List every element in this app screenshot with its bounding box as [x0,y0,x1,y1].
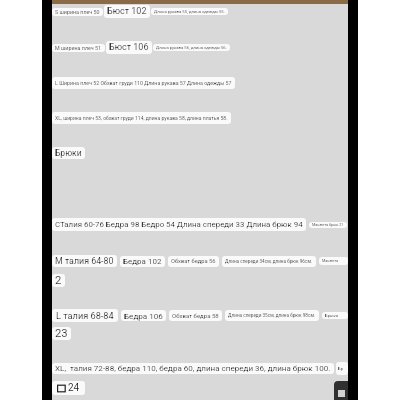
staticText: Длина рукава 56, длина одежды 56. [156,45,227,50]
staticText: 24 [68,382,80,394]
button[interactable]: Брюки [336,362,348,375]
staticText: Брюки [338,366,346,371]
button[interactable]: СТалия 60-76 Бедра 98 Бедро 54 Длина спе… [52,218,306,231]
button[interactable]: Длина спереди 35см, длина брюк 98см. [225,310,319,321]
staticText: Бедра 102 [123,257,162,266]
staticText: Брюки [55,148,82,158]
button[interactable]: 23 [52,327,71,340]
button[interactable]: XL, талия 72-88, бедра 110, бедра 60, дл… [52,363,334,374]
button[interactable]: Обхват бедра 56 [168,256,219,267]
button[interactable]: Длина спереди 34см, длина брюк 96см. [222,256,316,267]
staticText: XL, ширина плеч 53, обхват груди 114, дл… [55,115,228,121]
button[interactable]: Длина рукава 56, длина одежды 56. [153,44,230,51]
staticText: Длина рукава 55, длина одежды 55. [154,9,225,14]
button[interactable]: Бюст 102 [104,5,150,18]
button[interactable]: Длина рукава 55, длина одежды 55. [151,8,228,15]
button[interactable]: 24 [52,381,85,395]
button[interactable]: L Ширина плеч 52 Обхват груди 110 Длина … [52,77,235,89]
button[interactable]: Манжета брюк 21 [319,257,348,265]
button[interactable]: Бедра 106 [121,310,166,321]
staticText: S ширина плеч 50 [55,9,100,15]
staticText: XL, талия 72-88, бедра 110, бедра 60, дл… [55,364,331,373]
staticText: 2 [55,274,62,287]
staticText: Манжета брюк 21 [312,223,344,227]
button[interactable]: Манжета брюк 21 [309,222,347,228]
staticText: Длина спереди 34см, длина брюк 96см. [225,259,313,264]
staticText: M талия 64-80 [55,256,114,266]
button[interactable]: XL, ширина плеч 53, обхват груди 114, дл… [52,112,231,124]
staticText: Бюст 106 [109,42,149,53]
staticText: Обхват бедра 58 [172,312,219,319]
button[interactable]: M талия 64-80 [52,255,117,267]
button[interactable]: S ширина плеч 50 [52,8,103,16]
staticText: Бедра 106 [124,311,163,320]
staticText: Бюст 102 [107,6,147,17]
button[interactable]: Брюки [52,147,85,159]
staticText: Манжета брюк 21 [322,259,345,263]
button[interactable]: Брюки манжета [322,312,348,319]
staticText: СТалия 60-76 Бедра 98 Бедро 54 Длина спе… [55,220,303,229]
staticText: L Ширина плеч 52 Обхват груди 110 Длина … [55,80,232,86]
button[interactable]: Capture [334,381,348,400]
staticText: Брюки манжета [325,313,345,318]
button[interactable]: Бюст 106 [106,41,152,54]
button[interactable]: Обхват бедра 58 [169,310,222,321]
staticText: Длина спереди 35см, длина брюк 98см. [228,313,316,318]
button[interactable]: 2 [52,274,65,287]
button[interactable]: M ширина плеч 51 [52,44,105,52]
staticText: L талия 68-84 [56,310,114,321]
button[interactable]: Бедра 102 [120,256,165,267]
staticText: M ширина плеч 51 [55,45,102,51]
staticText: Обхват бедра 56 [171,258,216,265]
button[interactable]: L талия 68-84 [52,309,118,322]
staticText: 23 [55,327,68,340]
